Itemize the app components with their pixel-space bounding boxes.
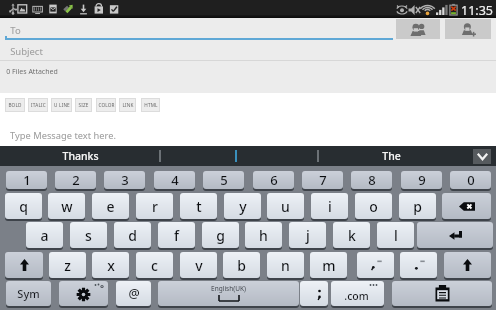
- button[interactable]: 4: [154, 171, 195, 189]
- staticText: 3: [121, 171, 129, 189]
- button[interactable]: o: [355, 193, 392, 219]
- staticText: 8: [368, 171, 376, 189]
- button[interactable]: 2: [55, 171, 96, 189]
- button[interactable]: j: [289, 222, 326, 248]
- staticText: k: [348, 226, 356, 245]
- button[interactable]: 3: [104, 171, 145, 189]
- button[interactable]: s: [70, 222, 107, 248]
- staticText: 4: [171, 171, 179, 189]
- staticText: 6: [270, 171, 278, 189]
- button[interactable]: a: [26, 222, 63, 248]
- button[interactable]: Symbols: [6, 281, 51, 306]
- staticText: v: [195, 256, 203, 275]
- button[interactable]: Enter: [417, 222, 493, 248]
- button[interactable]: g: [202, 222, 239, 248]
- staticText: 0: [467, 171, 475, 189]
- staticText: 0 Files Attached: [6, 67, 58, 77]
- button[interactable]: ITALIC: [28, 98, 48, 112]
- staticText: BOLD: [8, 102, 22, 108]
- button[interactable]: .com: [331, 281, 384, 306]
- button[interactable]: q: [5, 193, 42, 219]
- button[interactable]: Add contact: [445, 19, 491, 39]
- button[interactable]: Settings: [59, 281, 108, 306]
- button[interactable]: Period: [400, 252, 437, 278]
- button[interactable]: LINK: [119, 98, 136, 112]
- button[interactable]: c: [136, 252, 173, 278]
- staticText: .com: [344, 289, 369, 303]
- button[interactable]: b: [223, 252, 260, 278]
- button[interactable]: 1: [6, 171, 47, 189]
- staticText: d: [128, 226, 137, 245]
- button[interactable]: Expand suggestions: [473, 149, 491, 164]
- staticText: p: [413, 197, 422, 216]
- button[interactable]: w: [48, 193, 85, 219]
- button[interactable]: 9: [401, 171, 442, 189]
- staticText: Thanks: [62, 149, 99, 163]
- button[interactable]: e: [92, 193, 129, 219]
- button[interactable]: v: [180, 252, 217, 278]
- staticText: c: [151, 256, 158, 275]
- button[interactable]: Shift: [5, 252, 43, 278]
- staticText: To: [10, 24, 21, 37]
- staticText: w: [61, 197, 73, 216]
- button[interactable]: u: [267, 193, 304, 219]
- button[interactable]: i: [311, 193, 348, 219]
- button[interactable]: h: [245, 222, 282, 248]
- staticText: 11:35: [461, 2, 493, 19]
- button[interactable]: n: [267, 252, 304, 278]
- button[interactable]: f: [158, 222, 195, 248]
- button[interactable]: Thanks: [0, 146, 160, 166]
- button[interactable]: COLOR: [96, 98, 116, 112]
- staticText: i: [328, 197, 332, 216]
- staticText: x: [107, 256, 115, 275]
- staticText: 1: [23, 171, 31, 189]
- button[interactable]: 8: [351, 171, 392, 189]
- button[interactable]: BOLD: [5, 98, 25, 112]
- button[interactable]: Contacts: [396, 19, 440, 39]
- button[interactable]: @: [116, 281, 151, 306]
- button[interactable]: The: [321, 146, 461, 166]
- button[interactable]: Space: [158, 281, 299, 306]
- button[interactable]: p: [399, 193, 436, 219]
- button[interactable]: 6: [253, 171, 294, 189]
- button[interactable]: r: [136, 193, 173, 219]
- button[interactable]: Shift: [444, 252, 491, 278]
- button[interactable]: l: [377, 222, 414, 248]
- staticText: HTML: [144, 102, 158, 108]
- button[interactable]: y: [224, 193, 261, 219]
- button[interactable]: z: [49, 252, 86, 278]
- staticText: Subject: [10, 45, 43, 58]
- button[interactable]: 0: [450, 171, 491, 189]
- button[interactable]: Comma: [357, 252, 394, 278]
- button[interactable]: SIZE: [75, 98, 92, 112]
- staticText: Sym: [17, 286, 40, 301]
- staticText: 2: [72, 171, 80, 189]
- staticText: U LINE: [54, 102, 70, 108]
- button[interactable]: 5: [203, 171, 244, 189]
- button[interactable]: HTML: [141, 98, 160, 112]
- staticText: y: [239, 197, 247, 216]
- staticText: LINK: [122, 102, 134, 108]
- button[interactable]: Clipboard: [392, 281, 492, 306]
- button[interactable]: Semicolon: [300, 281, 328, 306]
- staticText: z: [64, 256, 71, 275]
- button[interactable]: k: [333, 222, 370, 248]
- button[interactable]: m: [310, 252, 347, 278]
- staticText: a: [40, 226, 49, 245]
- button[interactable]: x: [92, 252, 129, 278]
- staticText: f: [174, 226, 179, 245]
- staticText: h: [259, 226, 268, 245]
- button[interactable]: 7: [302, 171, 343, 189]
- button[interactable]: Backspace: [442, 193, 491, 219]
- staticText: @: [128, 285, 140, 302]
- button[interactable]: U LINE: [51, 98, 72, 112]
- button[interactable]: t: [180, 193, 217, 219]
- staticText: e: [106, 197, 115, 216]
- staticText: g: [216, 226, 225, 245]
- staticText: n: [281, 256, 290, 275]
- staticText: 5: [220, 171, 228, 189]
- staticText: 9: [418, 171, 426, 189]
- staticText: English(UK): [211, 284, 246, 293]
- button[interactable]: d: [114, 222, 151, 248]
- staticText: b: [237, 256, 246, 275]
